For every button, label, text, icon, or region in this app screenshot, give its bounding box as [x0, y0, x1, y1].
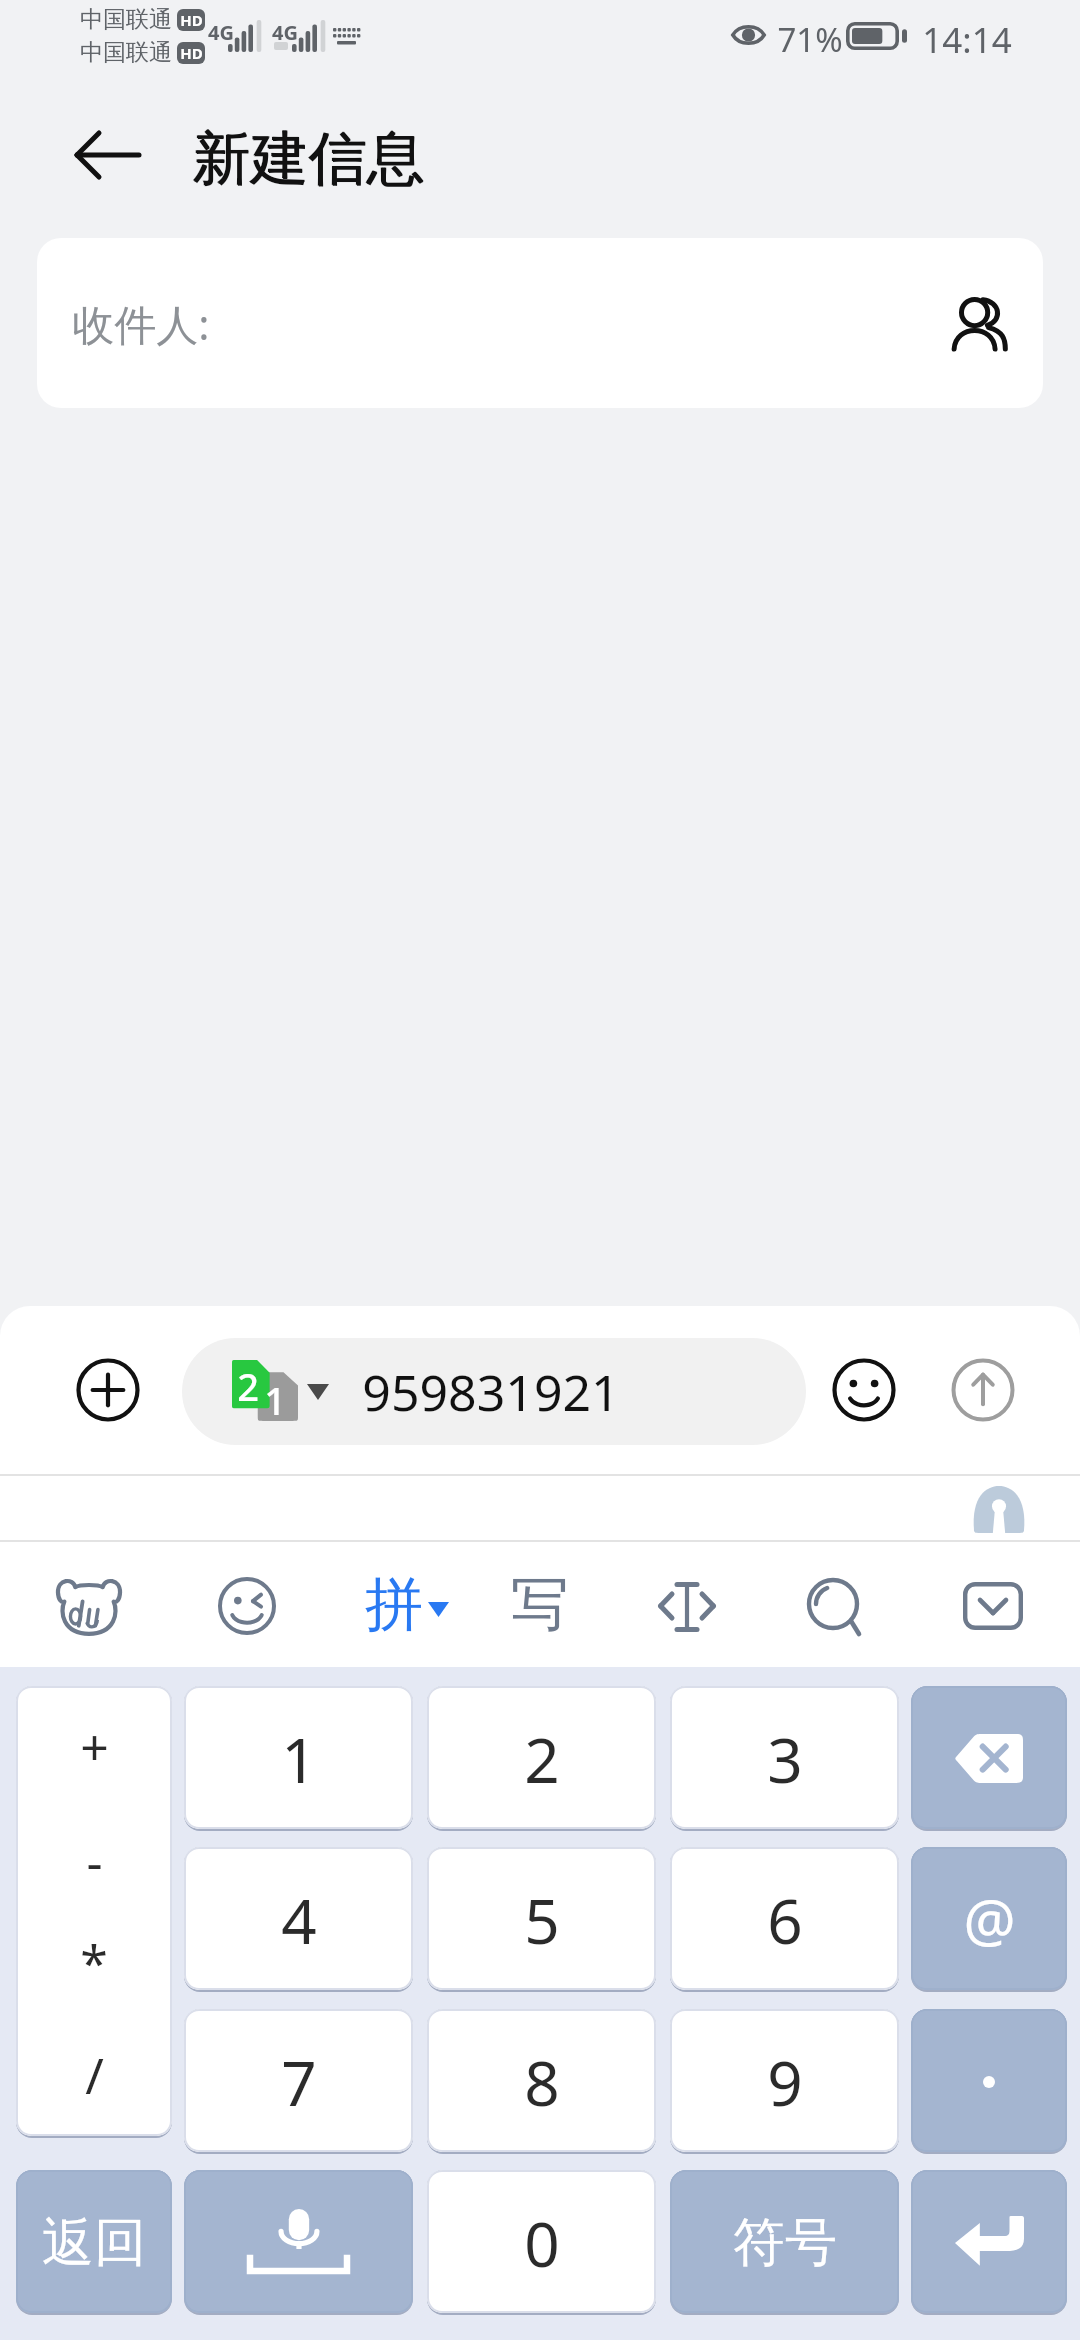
staticText: 4G	[272, 19, 298, 46]
staticText: +	[80, 1712, 109, 1780]
staticText: 新建信息	[193, 122, 425, 195]
button[interactable]: 5	[427, 1847, 656, 1992]
button[interactable]: 2	[427, 1686, 656, 1831]
staticText: 959831921	[362, 1358, 620, 1426]
staticText: 4	[281, 1878, 317, 1962]
staticText: HD	[180, 43, 203, 63]
button[interactable]: 7	[184, 2009, 413, 2154]
button[interactable]: Add attachment	[74, 1356, 142, 1424]
staticText: 返回	[42, 2210, 146, 2276]
button[interactable]: 2	[182, 1338, 806, 1445]
button[interactable]: 收件人:	[37, 238, 1043, 408]
staticText: 3	[767, 1717, 803, 1801]
button[interactable]	[911, 2009, 1067, 2154]
staticText: 中国联通	[80, 38, 172, 67]
button[interactable]: 返回	[16, 2170, 172, 2315]
staticText: *	[80, 1929, 108, 1997]
staticText: -	[86, 1827, 103, 1895]
button[interactable]: 符号	[670, 2170, 899, 2315]
staticText: 写	[511, 1568, 569, 1641]
button[interactable]: 拼	[358, 1564, 458, 1644]
staticText: 0	[524, 2201, 560, 2285]
button[interactable]: 4	[184, 1847, 413, 1992]
staticText: 71%	[777, 17, 843, 62]
button[interactable]: Voice input	[184, 2170, 413, 2315]
staticText: 6	[767, 1878, 803, 1962]
button[interactable]: 3	[670, 1686, 899, 1831]
staticText: @	[963, 1880, 1016, 1959]
staticText: 14:14	[922, 16, 1012, 64]
staticText: 7	[281, 2040, 317, 2124]
button[interactable]: Pick contacts	[943, 285, 1019, 361]
button[interactable]: Backspace	[911, 1686, 1067, 1831]
staticText: 8	[524, 2040, 560, 2124]
button[interactable]: Move cursor	[659, 1582, 715, 1632]
button[interactable]: Hide keyboard	[963, 1582, 1023, 1630]
button[interactable]: Emoji	[217, 1576, 277, 1636]
staticText: 1	[264, 1374, 286, 1426]
staticText: 新建信息	[192, 122, 424, 195]
button[interactable]: Search	[797, 1568, 869, 1640]
button[interactable]: 写	[507, 1564, 573, 1644]
staticText: 5	[524, 1878, 560, 1962]
button[interactable]: 1	[184, 1686, 413, 1831]
staticText: 符号	[733, 2210, 837, 2276]
button[interactable]: symbols	[16, 1686, 172, 2138]
button[interactable]: 8	[427, 2009, 656, 2154]
button[interactable]: Baidu input	[57, 1577, 121, 1635]
button[interactable]: 6	[670, 1847, 899, 1992]
staticText: 新建信息	[193, 123, 425, 196]
button[interactable]: Back	[50, 80, 164, 230]
staticText: 拼	[365, 1568, 423, 1641]
staticText: 收件人:	[72, 295, 210, 352]
button[interactable]: 9	[670, 2009, 899, 2154]
staticText: /	[85, 2041, 104, 2109]
button[interactable]: 0	[427, 2170, 656, 2315]
staticText: 中国联通	[80, 5, 172, 34]
button[interactable]: @	[911, 1847, 1067, 1992]
button[interactable]: Send	[951, 1358, 1015, 1422]
staticText: 9	[767, 2040, 803, 2124]
staticText: 4G	[208, 19, 234, 46]
staticText: 2	[524, 1717, 560, 1801]
button[interactable]: Enter	[911, 2170, 1067, 2315]
staticText: HD	[180, 10, 203, 30]
button[interactable]: Emoji	[832, 1358, 896, 1422]
staticText: 1	[281, 1717, 317, 1801]
staticText: 2	[237, 1360, 259, 1412]
